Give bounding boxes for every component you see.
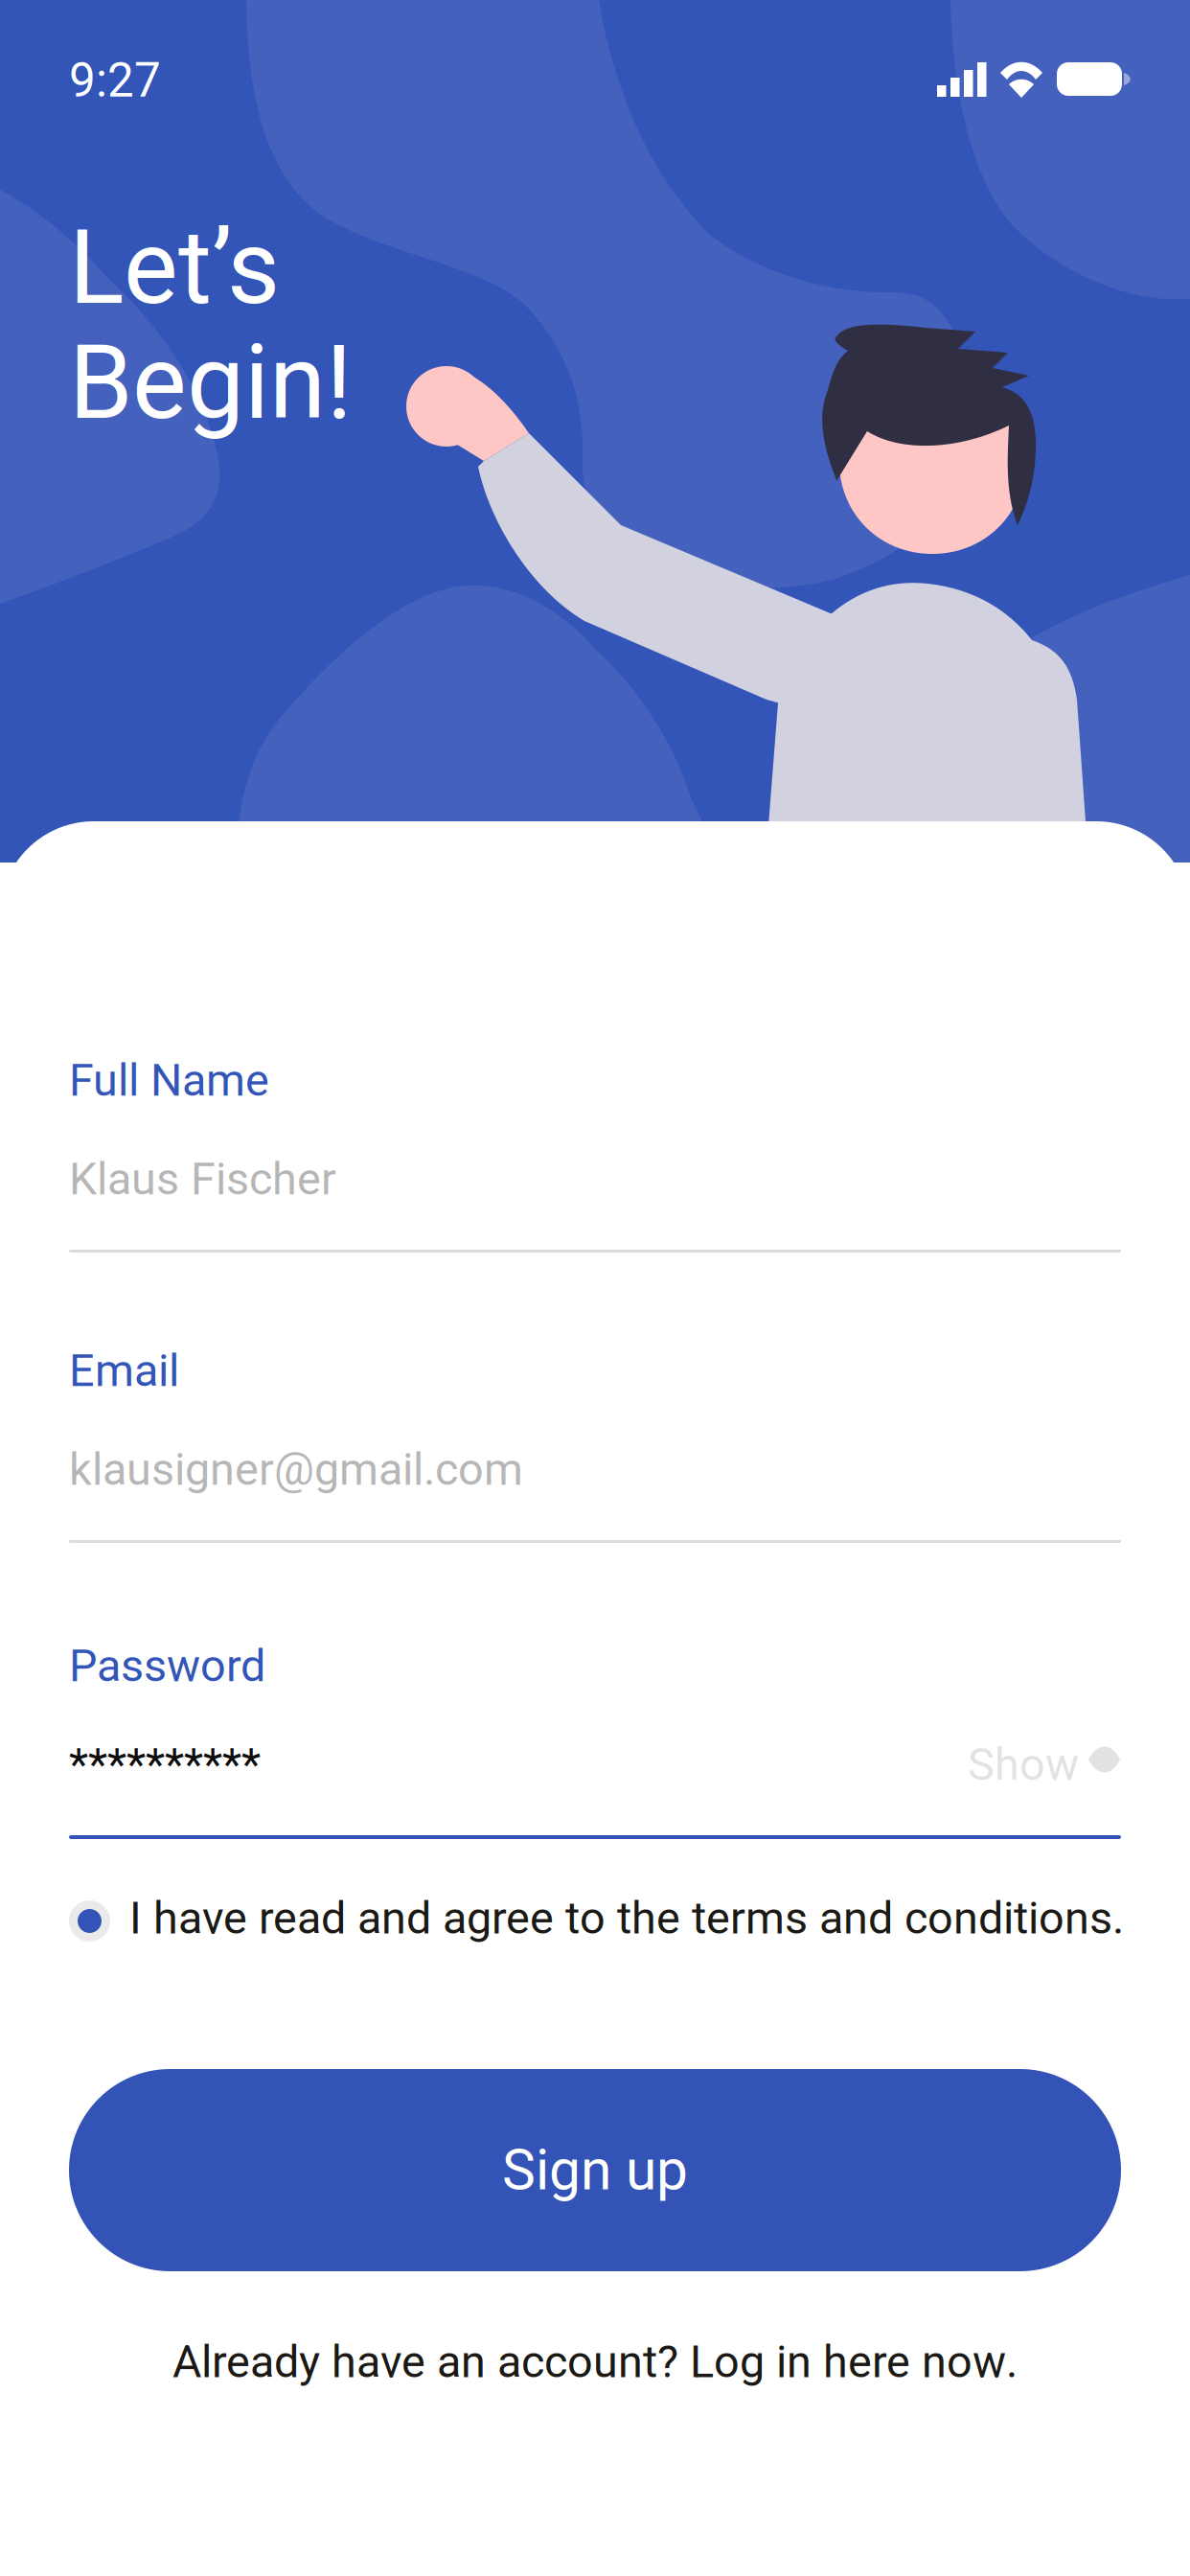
staticText: I have read and agree to the terms and c… bbox=[129, 1893, 1124, 1944]
staticText: Password bbox=[69, 1640, 265, 1692]
staticText: Klaus Fischer bbox=[69, 1153, 336, 1205]
staticText: 9:27 bbox=[69, 53, 161, 108]
staticText: Show bbox=[968, 1738, 1079, 1791]
button[interactable]: Already have an account? Log in here now… bbox=[172, 2336, 1018, 2387]
button[interactable]: Show bbox=[968, 1738, 1121, 1782]
button[interactable]: I have read and agree to the terms and c… bbox=[69, 1893, 1121, 1950]
staticText: Sign up bbox=[502, 2137, 688, 2203]
staticText: Let’s bbox=[69, 208, 280, 328]
staticText: Begin! bbox=[69, 323, 353, 443]
staticText: Already have an account? Log in here now… bbox=[172, 2336, 1018, 2387]
staticText: Full Name bbox=[69, 1054, 269, 1107]
staticText: Email bbox=[69, 1345, 179, 1397]
staticText: ********** bbox=[69, 1738, 261, 1791]
button[interactable]: Sign up bbox=[69, 2069, 1121, 2271]
staticText: klausigner@gmail.com bbox=[69, 1443, 523, 1496]
